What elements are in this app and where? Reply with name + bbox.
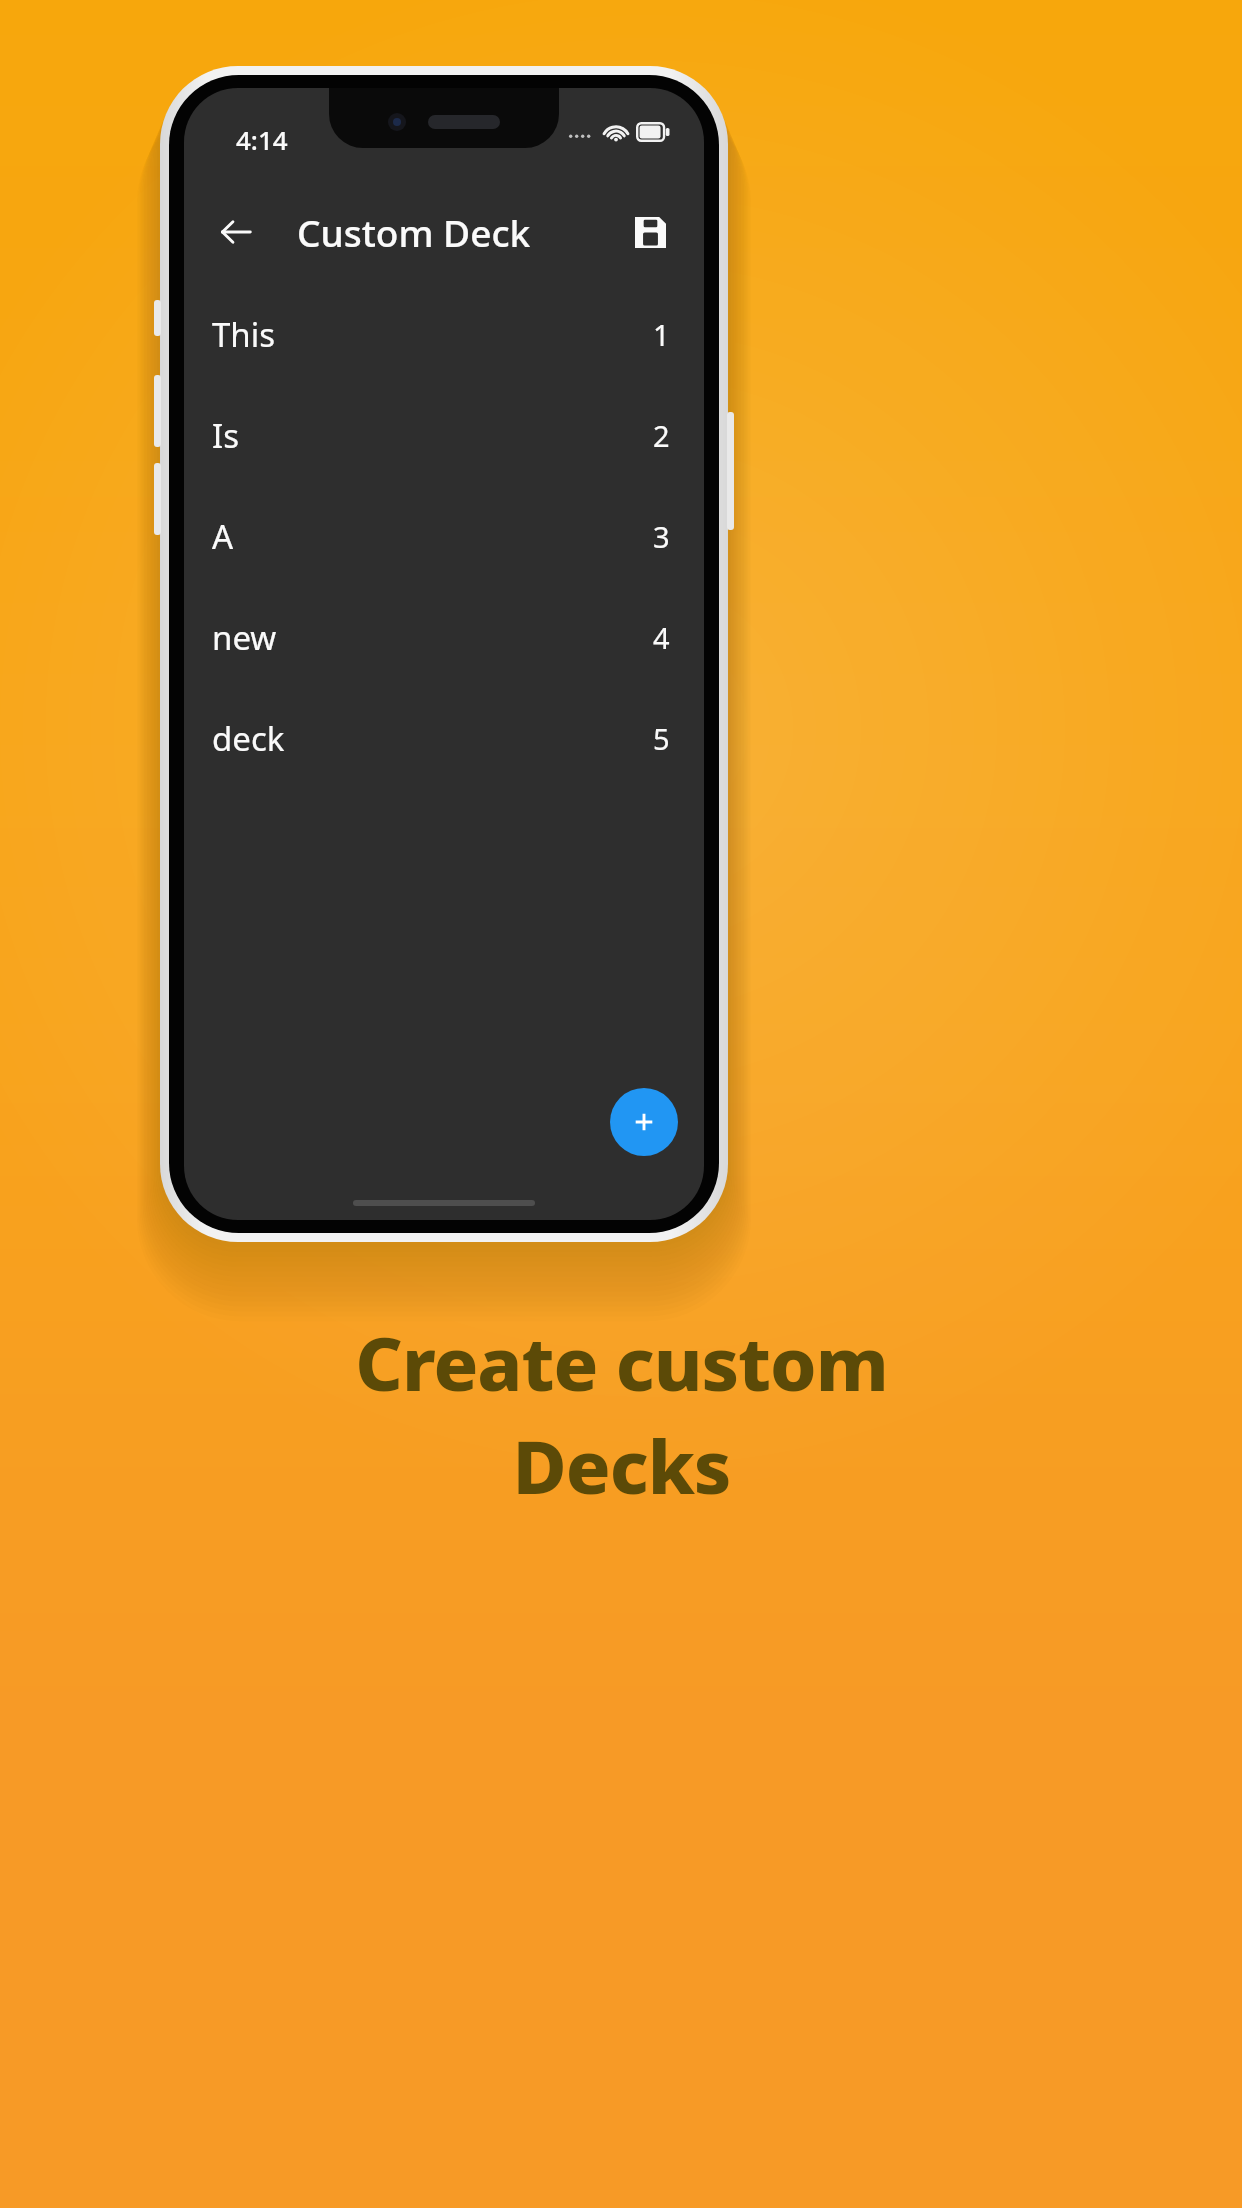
button[interactable]: deck xyxy=(184,688,704,789)
button[interactable]: Save xyxy=(622,204,678,260)
staticText: 4:14 xyxy=(236,122,288,157)
staticText: 3 xyxy=(653,517,670,556)
button[interactable]: This xyxy=(184,284,704,385)
staticText: 5 xyxy=(653,719,670,758)
staticText: new xyxy=(212,615,277,660)
button[interactable]: Back xyxy=(208,204,264,260)
staticText: Decks xyxy=(512,1415,731,1516)
staticText: Custom Deck xyxy=(297,207,531,257)
staticText: deck xyxy=(212,716,285,761)
staticText: 1 xyxy=(653,315,670,354)
staticText: Create custom xyxy=(355,1312,888,1413)
staticText: 4 xyxy=(653,618,670,657)
button[interactable]: Is xyxy=(184,385,704,486)
staticText: A xyxy=(212,514,234,559)
button[interactable]: A xyxy=(184,486,704,587)
button[interactable]: Add card xyxy=(610,1088,678,1156)
staticText: Is xyxy=(212,413,239,458)
staticText: 2 xyxy=(653,416,670,455)
staticText: This xyxy=(212,312,276,357)
button[interactable]: new xyxy=(184,587,704,688)
